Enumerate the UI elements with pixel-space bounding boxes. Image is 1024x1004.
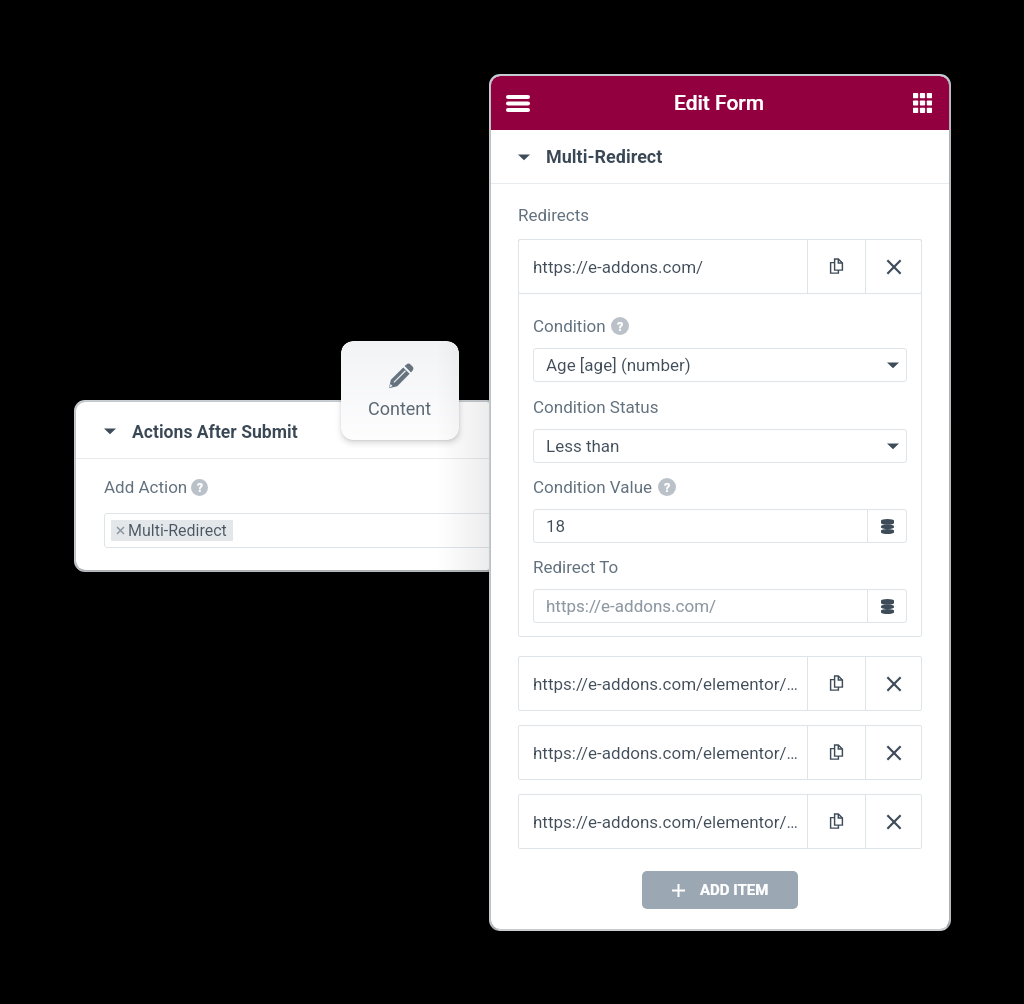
button[interactable]: Actions After Submit xyxy=(76,402,496,458)
button[interactable]: Dynamic tags xyxy=(868,509,907,543)
button[interactable]: https://e-addons.com/elementor/… xyxy=(518,656,922,711)
button[interactable]: Apps xyxy=(895,76,949,130)
button[interactable]: Duplicate xyxy=(808,656,865,711)
button[interactable]: Remove xyxy=(866,794,922,849)
button[interactable]: 18 xyxy=(533,509,907,543)
staticText: Condition Value xyxy=(533,477,653,497)
staticText: https://e-addons.com/ xyxy=(533,257,704,277)
staticText: Multi-Redirect xyxy=(128,521,227,540)
staticText: Condition Status xyxy=(533,397,659,417)
staticText: https://e-addons.com/ xyxy=(546,596,717,616)
staticText: Content xyxy=(368,398,432,419)
button[interactable]: Duplicate xyxy=(808,794,865,849)
button[interactable]: Remove xyxy=(866,239,922,294)
staticText: Multi-Redirect xyxy=(546,146,663,167)
button[interactable]: Content xyxy=(341,341,459,440)
button[interactable]: ADD ITEM xyxy=(642,871,798,909)
staticText: https://e-addons.com/elementor/… xyxy=(533,743,798,763)
button[interactable]: Multi-Redirect xyxy=(491,130,949,183)
staticText: Redirect To xyxy=(533,557,619,577)
button[interactable]: Remove xyxy=(866,725,922,780)
staticText: https://e-addons.com/elementor/… xyxy=(533,812,798,832)
staticText: ? xyxy=(617,319,624,334)
button[interactable]: Multi-Redirect xyxy=(104,513,496,548)
staticText: Edit Form xyxy=(674,91,765,116)
button[interactable]: Duplicate xyxy=(808,725,865,780)
button[interactable]: Duplicate xyxy=(808,239,865,294)
staticText: Condition xyxy=(533,316,606,336)
staticText: Redirects xyxy=(518,205,590,225)
button[interactable]: https://e-addons.com/elementor/… xyxy=(518,725,922,780)
button[interactable]: Age [age] (number) xyxy=(533,348,907,382)
staticText: ? xyxy=(664,480,671,495)
button[interactable]: Less than xyxy=(533,429,907,463)
staticText: 18 xyxy=(546,516,566,536)
button[interactable]: Dynamic tags xyxy=(868,589,907,623)
button[interactable]: https://e-addons.com/elementor/… xyxy=(518,794,922,849)
staticText: Add Action xyxy=(104,477,188,497)
staticText: https://e-addons.com/elementor/… xyxy=(533,674,798,694)
button[interactable]: https://e-addons.com/ xyxy=(533,589,907,623)
staticText: Actions After Submit xyxy=(132,422,298,443)
staticText: ADD ITEM xyxy=(700,881,769,899)
button[interactable]: https://e-addons.com/ xyxy=(518,239,922,294)
staticText: ? xyxy=(197,481,203,495)
button[interactable]: Remove xyxy=(866,656,922,711)
button[interactable]: Menu xyxy=(491,76,545,130)
staticText: Age [age] (number) xyxy=(546,355,691,375)
staticText: Less than xyxy=(546,436,620,456)
